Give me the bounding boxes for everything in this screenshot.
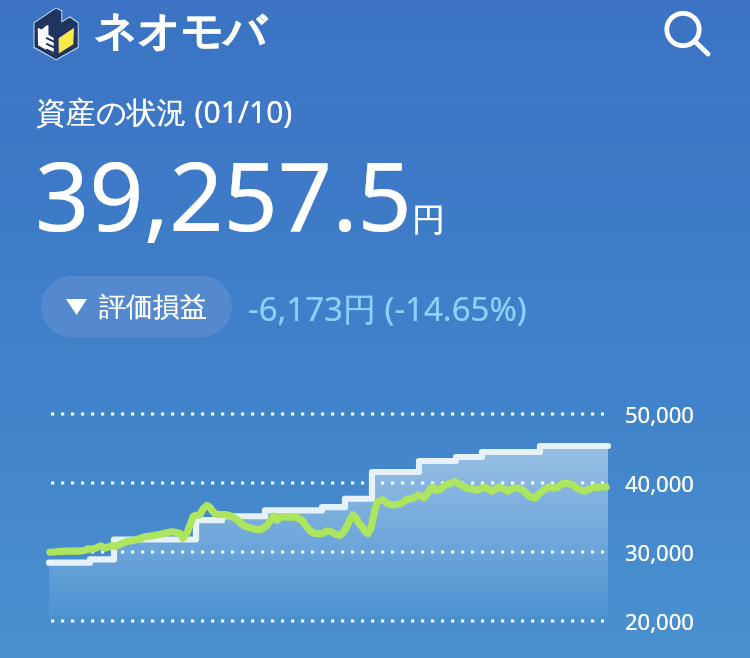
staticText: 40,000	[625, 468, 694, 498]
staticText: -6,173円 (-14.65%)	[248, 286, 527, 331]
staticText: 39,257.5	[35, 129, 412, 258]
staticText: 資産の状況 (01/10)	[36, 91, 293, 132]
staticText: 50,000	[625, 399, 694, 429]
button[interactable]: 評価損益	[41, 276, 232, 337]
button[interactable]: Search	[652, 0, 724, 70]
staticText: 30,000	[625, 537, 694, 567]
staticText: 評価損益	[99, 290, 207, 324]
staticText: 20,000	[625, 606, 694, 636]
staticText: 円	[412, 199, 445, 241]
staticText: ネオモバ	[94, 6, 266, 59]
